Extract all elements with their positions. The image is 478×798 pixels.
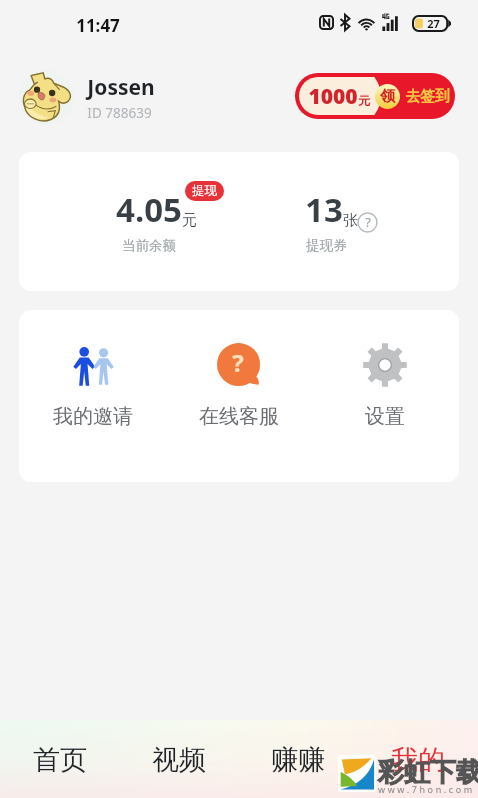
button[interactable]: 设置 (337, 343, 433, 429)
staticText: 首页 (33, 743, 87, 777)
button[interactable]: 首页 (0, 720, 119, 798)
button[interactable]: Jossen (19, 70, 155, 125)
staticText: 视频 (152, 743, 206, 777)
staticText: 张 (343, 211, 358, 230)
staticText: ? (232, 346, 244, 379)
staticText: 11:47 (76, 14, 120, 37)
staticText: 当前余额 (122, 237, 176, 254)
button[interactable]: 赚赚 (238, 720, 358, 798)
staticText: 13 (305, 187, 343, 232)
staticText: ID 788639 (87, 104, 152, 122)
staticText: 元 (182, 211, 197, 230)
staticText: 领 (380, 87, 395, 106)
button[interactable]: 1000 (295, 73, 455, 119)
staticText: Jossen (87, 73, 155, 102)
staticText: 4.05 (116, 187, 182, 232)
staticText: 在线客服 (199, 404, 279, 429)
staticText: 提现券 (306, 237, 347, 254)
staticText: 去签到 (405, 87, 450, 106)
button[interactable]: ? (191, 343, 287, 429)
button[interactable]: 说明 (357, 212, 378, 233)
staticText: 27 (427, 16, 440, 31)
staticText: 我的 (391, 743, 445, 777)
staticText: 彩虹下载 (378, 756, 478, 789)
staticText: 元 (358, 93, 370, 108)
button[interactable]: 视频 (119, 720, 238, 798)
button[interactable]: 我的邀请 (45, 343, 141, 429)
button[interactable]: 提现 (185, 181, 224, 201)
button[interactable]: 我的 (358, 720, 478, 798)
staticText: 设置 (365, 404, 405, 429)
staticText: 赚赚 (271, 743, 325, 777)
staticText: ? (365, 213, 371, 231)
staticText: www.7hon.com (378, 783, 475, 795)
staticText: 1000 (308, 82, 358, 111)
staticText: 我的邀请 (53, 404, 133, 429)
staticText: 提现 (192, 183, 217, 199)
